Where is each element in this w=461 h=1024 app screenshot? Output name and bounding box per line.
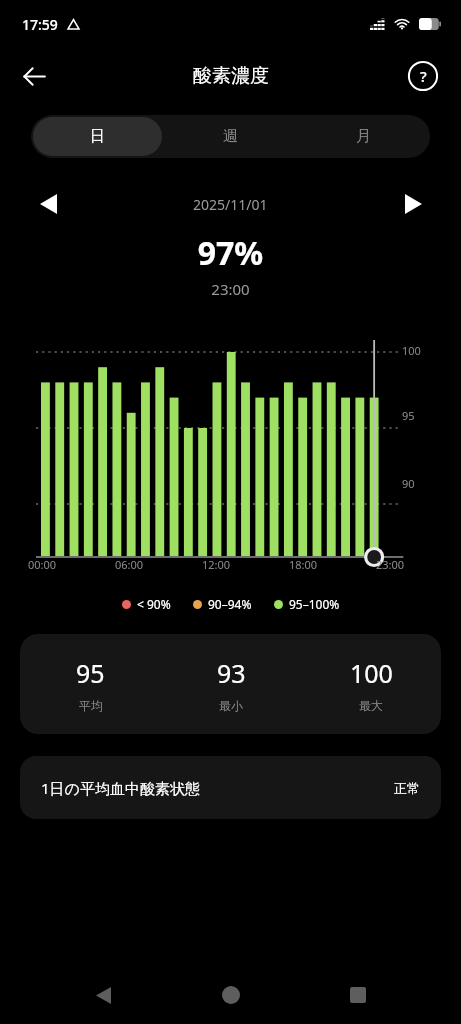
staticText: 日 xyxy=(90,127,105,146)
staticText: 93 xyxy=(217,656,246,690)
staticText: 2025/11/01 xyxy=(193,195,268,214)
staticText: 95 xyxy=(402,408,415,423)
button[interactable]: Back xyxy=(10,52,58,100)
staticText: 100 xyxy=(350,656,393,690)
staticText: 23:00 xyxy=(0,279,461,299)
staticText: 週 xyxy=(223,127,238,146)
staticText: 06:00 xyxy=(115,557,144,572)
button[interactable]: 日 xyxy=(33,117,162,156)
staticText: 1日の平均血中酸素状態 xyxy=(41,778,394,798)
button[interactable]: Help xyxy=(402,55,444,97)
button[interactable]: 週 xyxy=(166,117,295,156)
button[interactable]: Previous day xyxy=(30,188,66,220)
button[interactable]: Home xyxy=(207,971,255,1019)
staticText: ? xyxy=(420,66,427,86)
staticText: 95–100% xyxy=(289,596,340,612)
staticText: 95 xyxy=(76,656,105,690)
staticText: 90 xyxy=(402,476,415,491)
staticText: 正常 xyxy=(394,780,420,796)
staticText: 12:00 xyxy=(202,557,231,572)
staticText: 100 xyxy=(402,343,421,358)
staticText: 最小 xyxy=(219,698,243,713)
button[interactable]: Next day xyxy=(395,188,431,220)
staticText: 00:00 xyxy=(28,557,57,572)
staticText: 平均 xyxy=(79,698,103,713)
staticText: 最大 xyxy=(359,698,383,713)
staticText: 酸素濃度 xyxy=(193,64,269,88)
button[interactable]: Back xyxy=(79,971,127,1019)
staticText: 23:00 xyxy=(376,557,405,572)
button[interactable]: 95 xyxy=(20,634,441,734)
button[interactable]: 月 xyxy=(299,117,428,156)
staticText: 18:00 xyxy=(289,557,318,572)
staticText: 17:59 xyxy=(22,15,58,34)
staticText: < 90% xyxy=(137,596,171,612)
staticText: 90–94% xyxy=(208,596,252,612)
staticText: 97% xyxy=(0,231,461,275)
button[interactable]: 1日の平均血中酸素状態 xyxy=(20,756,441,819)
button[interactable]: Recents xyxy=(334,971,382,1019)
staticText: 月 xyxy=(356,127,371,146)
